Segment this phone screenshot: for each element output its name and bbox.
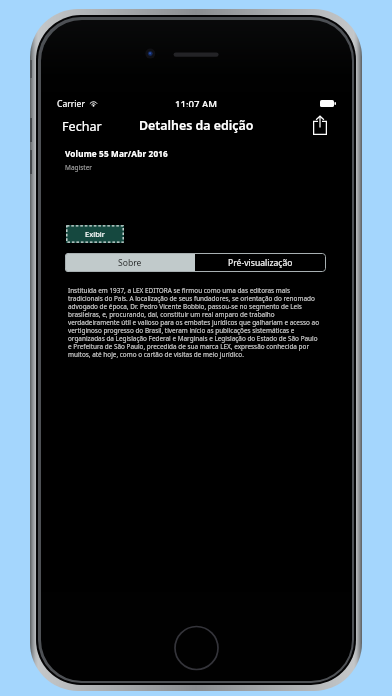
staticText: Fechar	[62, 118, 102, 132]
staticText: Volume 55 Mar/Abr 2016	[65, 148, 168, 159]
staticText: Magister	[65, 163, 93, 172]
staticText: Pré-visualização	[228, 257, 293, 269]
staticText: Detalhes da edição	[139, 117, 254, 134]
staticText: Carrier	[57, 98, 85, 107]
staticText: Sobre	[118, 257, 142, 269]
staticText: Instituída em 1937, a LEX EDITORA se fir…	[68, 286, 322, 359]
button[interactable]: Pré-visualização	[195, 253, 326, 272]
button[interactable]: Fechar	[41, 113, 112, 137]
staticText: Exibir	[85, 229, 105, 239]
button[interactable]: Share	[303, 115, 351, 136]
button[interactable]: Sobre	[65, 253, 195, 272]
button[interactable]: Exibir	[66, 225, 124, 243]
staticText: 11:07 AM	[175, 98, 218, 107]
